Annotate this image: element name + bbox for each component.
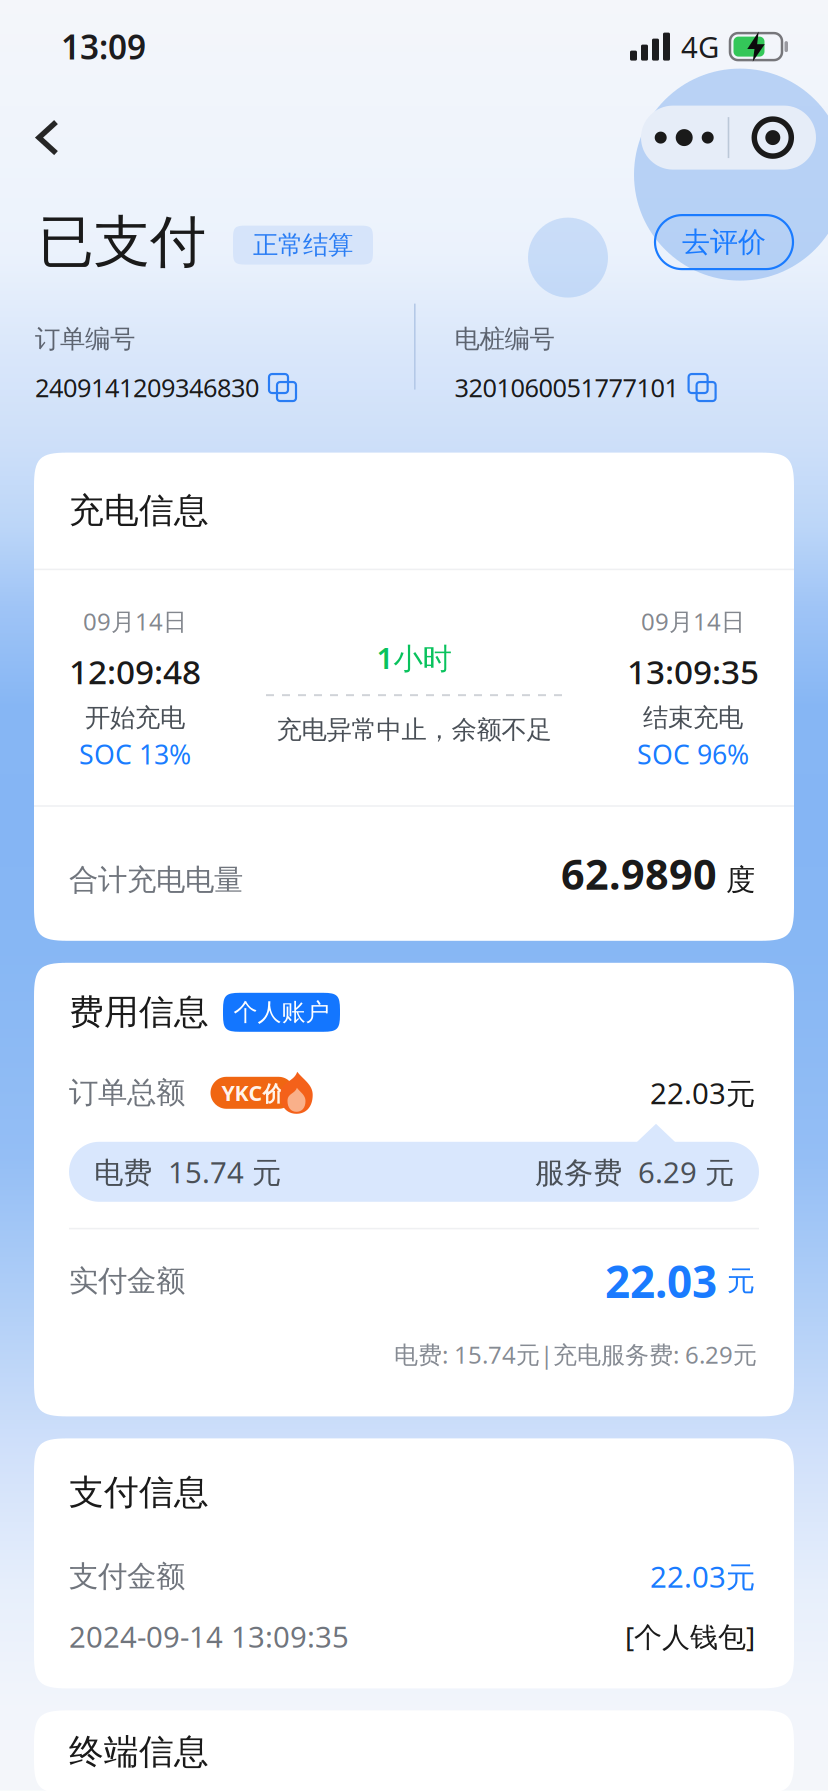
staticText: 服务费 6.29 元 [535,1152,734,1191]
staticText: 2409141209346830 [35,371,259,404]
staticText: 3201060051777101 [455,371,679,404]
staticText: YKC价 [221,1079,283,1107]
staticText: 支付金额 [69,1558,185,1594]
staticText: 电桩编号 [455,324,555,355]
staticText: 充电异常中止，余额不足 [276,714,551,745]
staticText: 费用信息 [69,991,209,1034]
staticText: 4G [681,27,719,66]
staticText: 62.9890 [561,846,717,901]
staticText: 电费: 15.74元|充电服务费: 6.29元 [394,1338,757,1370]
staticText: SOC 96% [637,736,749,772]
button[interactable]: Close [729,106,816,170]
staticText: 09月14日 [641,605,745,637]
staticText: 正常结算 [253,229,353,261]
staticText: [个人钱包] [625,1618,755,1655]
button[interactable]: 去评价 [655,215,793,269]
staticText: 开始充电 [85,702,185,733]
staticText: 电费 15.74 元 [94,1152,281,1191]
staticText: 终端信息 [69,1731,209,1773]
staticText: 合计充电电量 [69,862,243,898]
staticText: 结束充电 [643,702,743,733]
staticText: SOC 13% [79,736,191,772]
staticText: 充电信息 [69,489,209,532]
staticText: 订单总额 [69,1075,185,1111]
staticText: 13:09 [61,24,146,69]
staticText: 22.03元 [650,1073,755,1112]
staticText: 度 [726,862,755,898]
staticText: 订单编号 [35,324,135,355]
staticText: 12:09:48 [69,649,201,693]
staticText: 2024-09-14 13:09:35 [69,1617,349,1656]
staticText: 22.03元 [650,1557,755,1596]
staticText: 已支付 [38,208,206,276]
staticText: 实付金额 [69,1263,185,1299]
staticText: 1小时 [376,638,451,677]
button[interactable]: Copy 订单编号 [268,373,297,402]
button[interactable]: Back [0,95,88,180]
staticText: 支付信息 [69,1471,209,1514]
staticText: 22.03 [605,1252,717,1310]
staticText: 个人账户 [233,998,329,1027]
staticText: 去评价 [682,225,766,259]
button[interactable]: Copy 电桩编号 [688,373,717,402]
staticText: 13:09:35 [627,649,759,693]
staticText: 09月14日 [83,605,187,637]
button[interactable]: More [641,106,728,170]
staticText: 元 [727,1264,755,1298]
